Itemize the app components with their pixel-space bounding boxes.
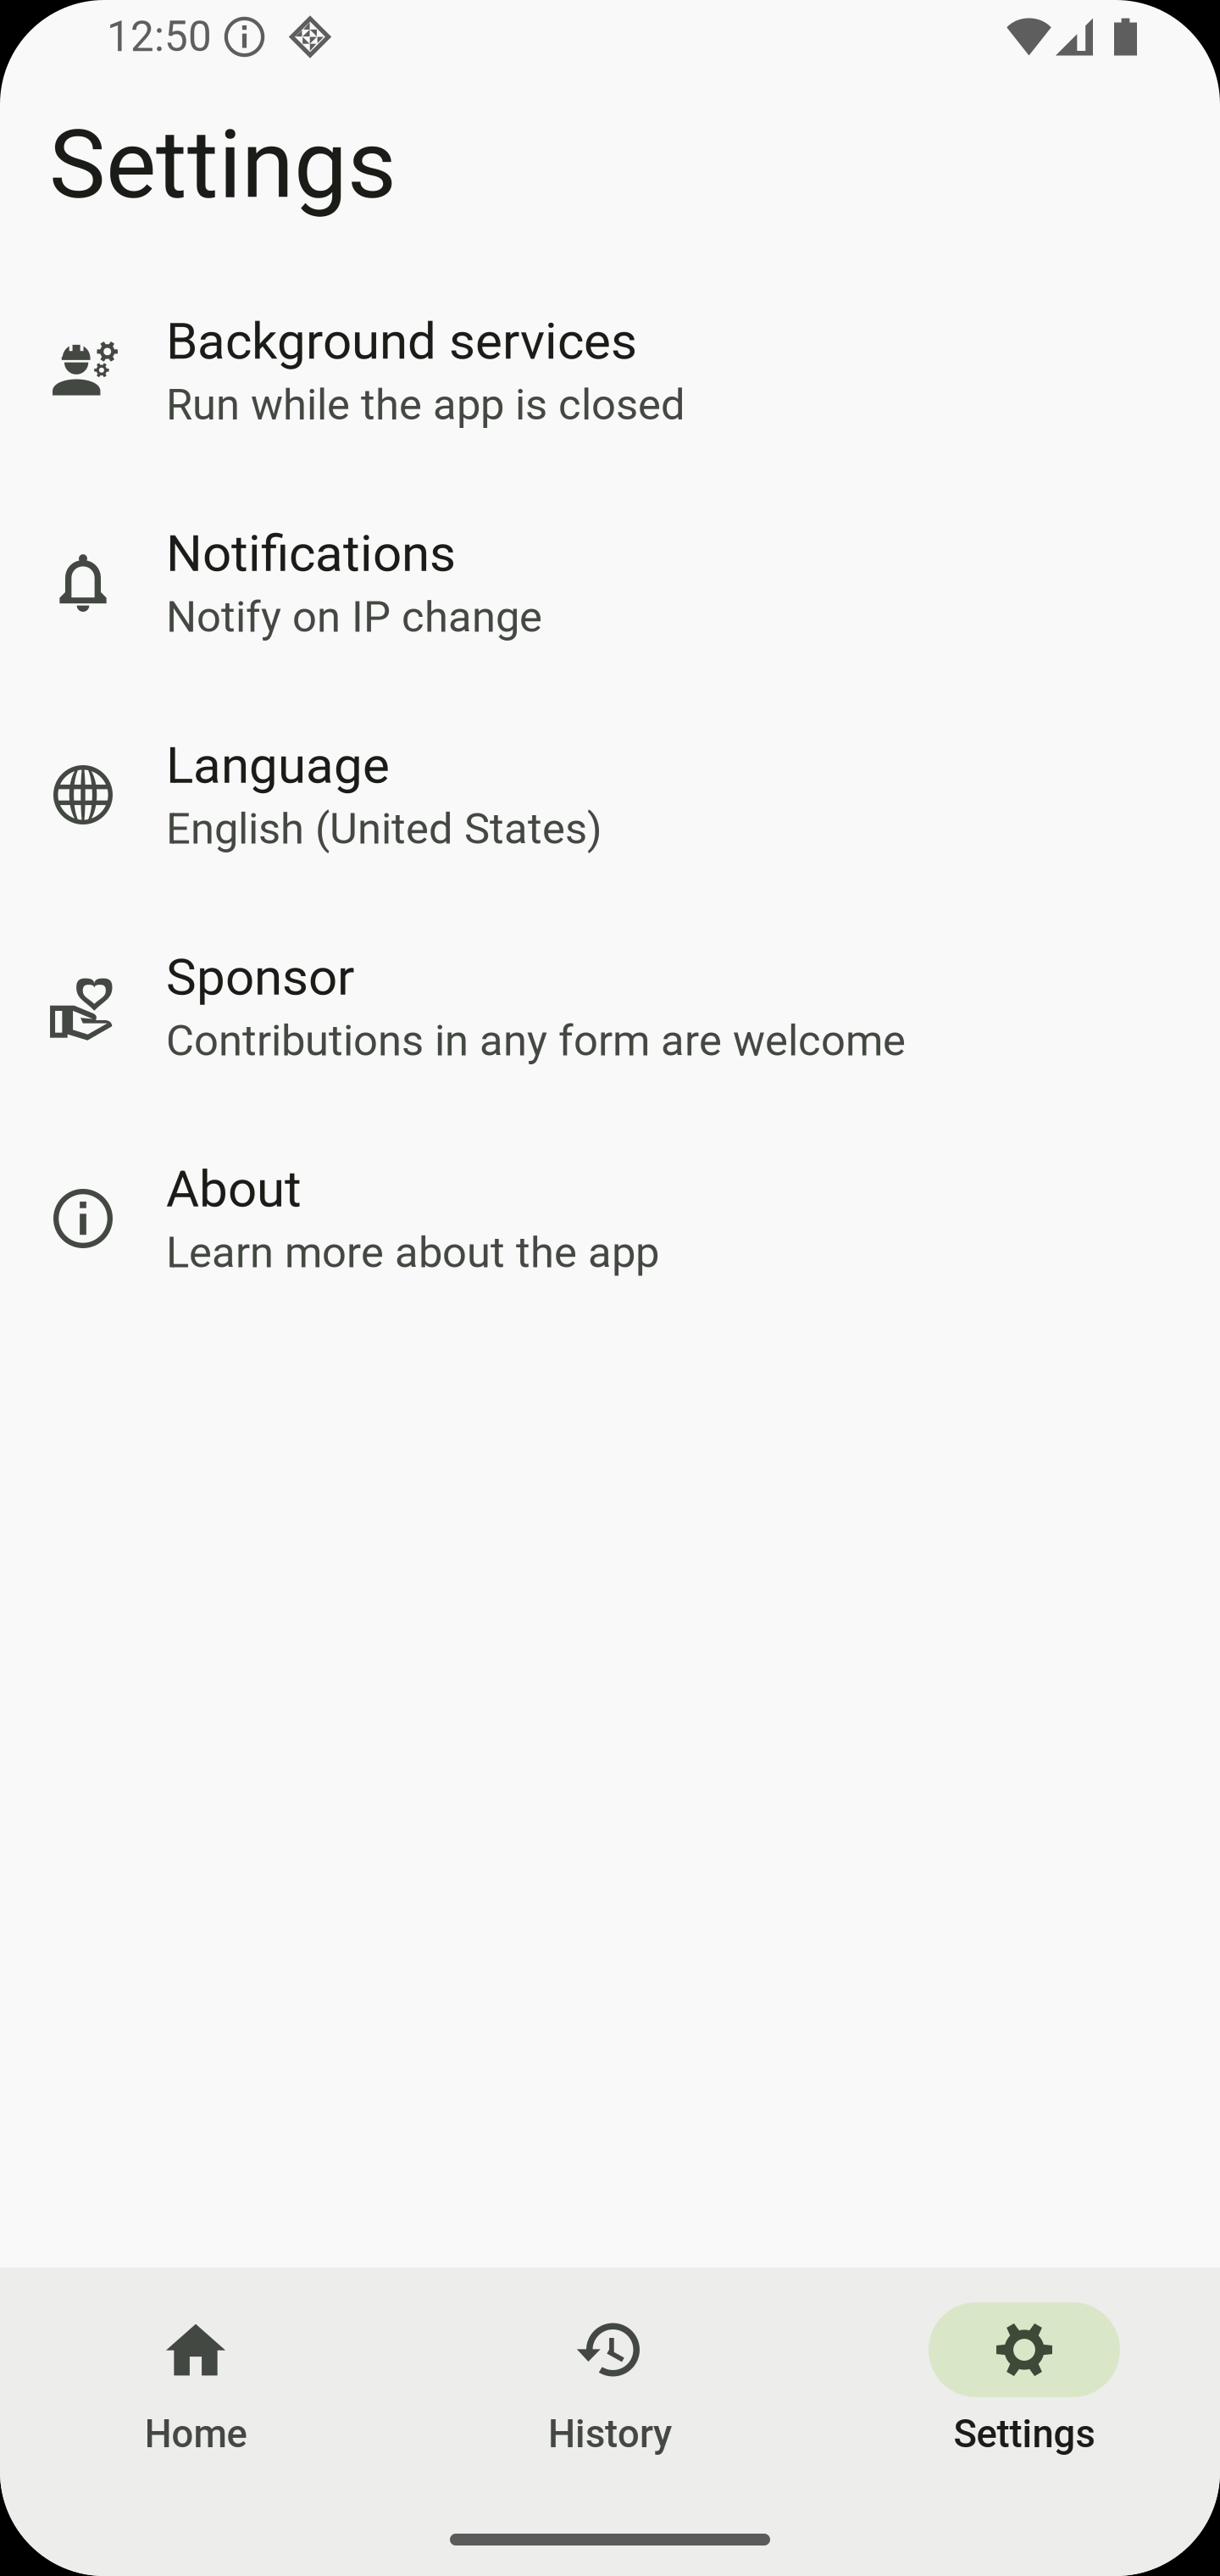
staticText: Settings [49, 109, 396, 220]
staticText: 12:50 [107, 12, 212, 61]
staticText: English (United States) [166, 804, 602, 854]
button[interactable]: Home [69, 2302, 323, 2463]
button[interactable]: Settings [897, 2302, 1151, 2463]
staticText: Run while the app is closed [166, 380, 685, 430]
staticText: Notify on IP change [166, 592, 542, 642]
button[interactable]: Language [0, 689, 1220, 901]
staticText: Language [166, 736, 390, 795]
staticText: Background services [166, 312, 637, 371]
button[interactable]: History [483, 2302, 737, 2463]
staticText: Contributions in any form are welcome [166, 1016, 906, 1066]
staticText: Settings [954, 2412, 1095, 2457]
button[interactable]: Background services [0, 264, 1220, 477]
staticText: History [548, 2412, 672, 2457]
staticText: Sponsor [166, 948, 354, 1007]
button[interactable]: About [0, 1113, 1220, 1324]
staticText: Learn more about the app [166, 1227, 659, 1278]
staticText: Home [144, 2412, 247, 2457]
staticText: Notifications [166, 524, 456, 583]
button[interactable]: Sponsor [0, 901, 1220, 1113]
button[interactable]: Notifications [0, 477, 1220, 689]
staticText: About [166, 1159, 302, 1219]
